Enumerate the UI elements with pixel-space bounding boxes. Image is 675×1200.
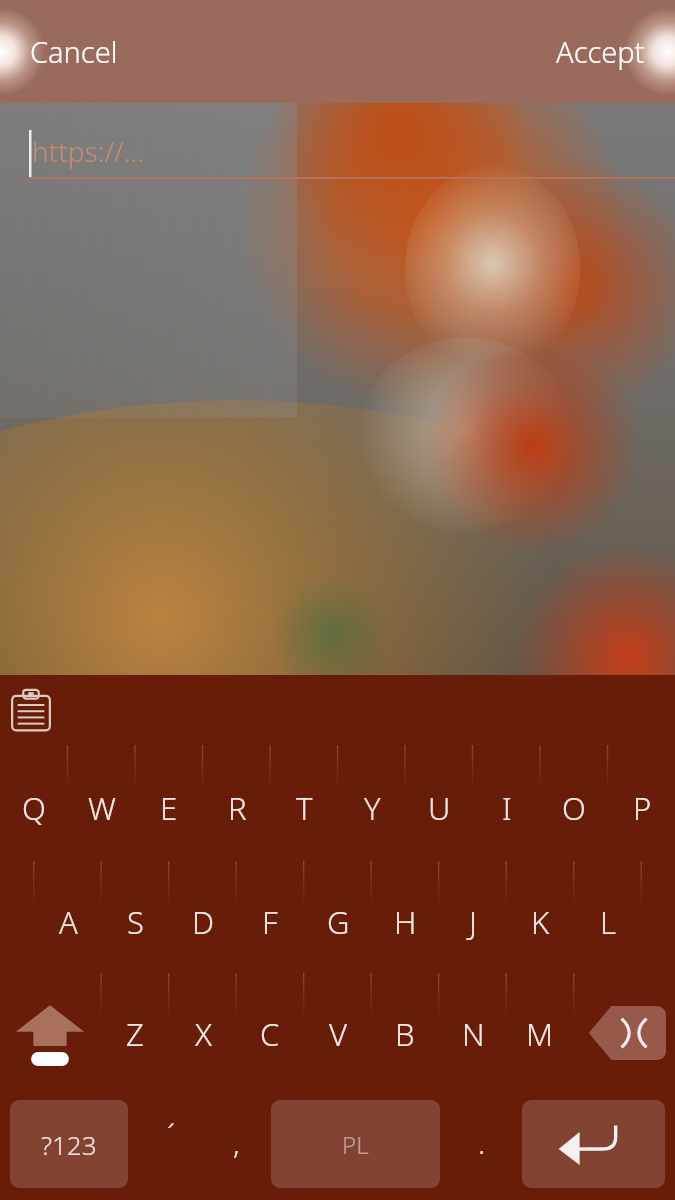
staticText: E — [160, 787, 178, 829]
staticText: ´ — [167, 1114, 175, 1155]
button[interactable]: L — [574, 890, 642, 954]
button[interactable]: D — [169, 890, 237, 954]
button[interactable]: F — [236, 890, 304, 954]
staticText: S — [127, 901, 144, 943]
button[interactable]: E — [135, 776, 203, 840]
button[interactable]: Q — [0, 776, 68, 840]
staticText: L — [600, 901, 616, 943]
button[interactable]: R — [203, 776, 271, 840]
button[interactable]: Accept — [552, 24, 649, 79]
button[interactable]: Z — [101, 1002, 169, 1066]
button[interactable]: Clipboard — [8, 688, 54, 734]
button[interactable]: N — [439, 1002, 507, 1066]
staticText: , — [233, 1122, 240, 1163]
button[interactable]: M — [506, 1002, 574, 1066]
button[interactable]: PL — [271, 1100, 440, 1188]
button[interactable]: I — [473, 776, 541, 840]
button[interactable]: Shift — [5, 995, 95, 1073]
staticText: PL — [342, 1128, 369, 1161]
button[interactable]: S — [101, 890, 169, 954]
staticText: F — [262, 901, 278, 943]
staticText: M — [526, 1013, 554, 1055]
staticText: https://… — [32, 132, 145, 170]
button[interactable]: W — [68, 776, 136, 840]
staticText: W — [88, 787, 116, 829]
staticText: Z — [126, 1013, 144, 1055]
button[interactable]: A — [34, 890, 102, 954]
button[interactable]: . — [448, 1100, 516, 1188]
staticText: B — [395, 1013, 415, 1055]
staticText: V — [329, 1013, 348, 1055]
button[interactable]: Backspace — [588, 1003, 666, 1063]
staticText: ?123 — [41, 1127, 97, 1162]
button[interactable]: X — [169, 1002, 237, 1066]
button[interactable]: Y — [338, 776, 406, 840]
button[interactable]: B — [371, 1002, 439, 1066]
button[interactable]: ´ — [138, 1100, 204, 1188]
button[interactable]: Cancel — [26, 24, 122, 79]
staticText: T — [296, 787, 313, 829]
button[interactable]: P — [608, 776, 675, 840]
staticText: Accept — [556, 32, 645, 71]
button[interactable]: O — [540, 776, 608, 840]
staticText: J — [469, 901, 477, 943]
button[interactable]: U — [405, 776, 473, 840]
staticText: Cancel — [30, 32, 118, 71]
button[interactable]: G — [304, 890, 372, 954]
button[interactable]: Enter — [522, 1100, 665, 1188]
staticText: C — [260, 1013, 280, 1055]
staticText: D — [192, 901, 215, 943]
button[interactable]: https://… — [0, 118, 675, 196]
staticText: . — [478, 1122, 486, 1163]
button[interactable]: V — [304, 1002, 372, 1066]
staticText: P — [633, 787, 652, 829]
button[interactable]: T — [270, 776, 338, 840]
staticText: K — [531, 901, 550, 943]
staticText: H — [394, 901, 417, 943]
button[interactable]: K — [506, 890, 574, 954]
button[interactable]: , — [204, 1100, 268, 1188]
button[interactable]: ?123 — [10, 1100, 128, 1188]
staticText: O — [562, 787, 586, 829]
staticText: U — [428, 787, 451, 829]
staticText: Y — [364, 787, 381, 829]
staticText: X — [195, 1013, 212, 1055]
button[interactable]: J — [439, 890, 507, 954]
staticText: I — [502, 787, 512, 829]
staticText: R — [228, 787, 247, 829]
staticText: G — [327, 901, 350, 943]
staticText: Q — [22, 787, 46, 829]
staticText: A — [59, 901, 78, 943]
button[interactable]: C — [236, 1002, 304, 1066]
button[interactable]: H — [371, 890, 439, 954]
staticText: N — [462, 1013, 485, 1055]
